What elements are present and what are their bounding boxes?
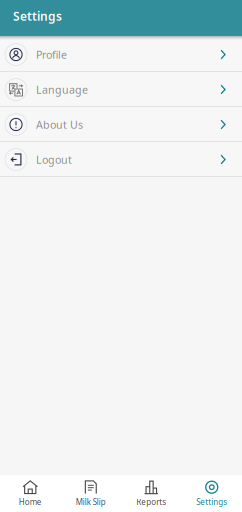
staticText: Logout <box>36 152 72 167</box>
button[interactable]: Profile <box>0 37 242 72</box>
staticText: Milk Slip <box>76 497 106 507</box>
staticText: Settings <box>196 497 227 507</box>
button[interactable]: Milk Slip <box>60 476 121 511</box>
button[interactable]: Reports <box>121 476 181 511</box>
staticText: Profile <box>36 47 67 62</box>
staticText: Settings <box>13 8 62 24</box>
button[interactable]: Settings <box>181 476 242 511</box>
button[interactable]: Home <box>0 476 60 511</box>
staticText: About Us <box>36 117 83 132</box>
button[interactable]: Logout <box>0 142 242 177</box>
staticText: Reports <box>136 497 166 507</box>
staticText: Language <box>36 82 88 97</box>
button[interactable]: Language <box>0 72 242 107</box>
staticText: Home <box>19 497 42 507</box>
button[interactable]: About Us <box>0 107 242 142</box>
